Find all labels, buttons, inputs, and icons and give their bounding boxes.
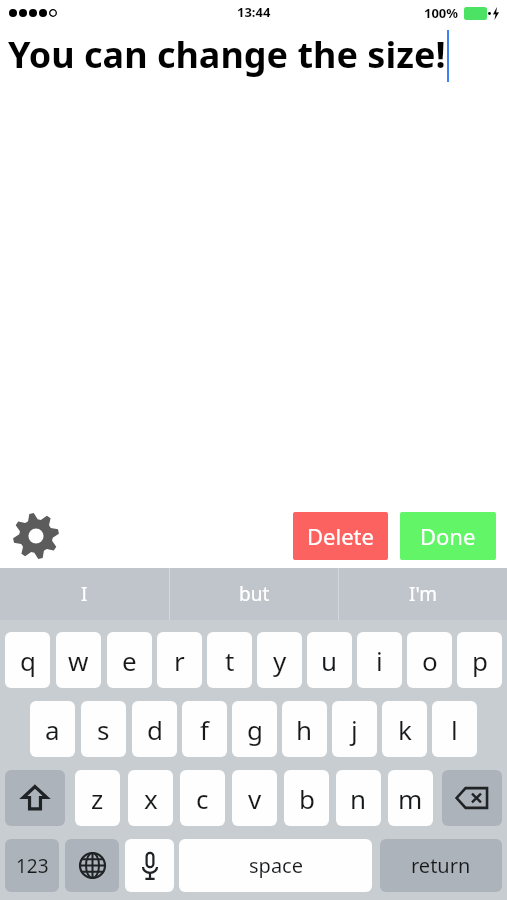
button[interactable]: h bbox=[282, 701, 327, 757]
button[interactable]: but bbox=[170, 568, 338, 620]
button[interactable]: g bbox=[232, 701, 277, 757]
button[interactable]: f bbox=[182, 701, 227, 757]
button[interactable]: y bbox=[257, 632, 302, 688]
button[interactable]: x bbox=[128, 770, 173, 826]
button[interactable]: t bbox=[207, 632, 252, 688]
staticText: 13:44 bbox=[237, 3, 271, 21]
staticText: return bbox=[411, 852, 471, 879]
staticText: h bbox=[296, 712, 313, 747]
staticText: c bbox=[196, 781, 209, 816]
staticText: p bbox=[472, 643, 488, 678]
staticText: 100% bbox=[424, 4, 459, 22]
staticText: o bbox=[422, 643, 438, 678]
staticText: 123 bbox=[16, 853, 49, 879]
staticText: l bbox=[451, 712, 458, 747]
button[interactable]: Done bbox=[400, 512, 496, 560]
staticText: x bbox=[144, 781, 158, 816]
button[interactable]: Change keyboard bbox=[65, 839, 119, 892]
staticText: n bbox=[350, 781, 367, 816]
staticText: I'm bbox=[409, 581, 437, 607]
button[interactable]: Backspace bbox=[442, 770, 502, 826]
button[interactable]: z bbox=[75, 770, 120, 826]
button[interactable]: a bbox=[30, 701, 75, 757]
button[interactable]: Delete bbox=[293, 512, 388, 560]
staticText: f bbox=[200, 712, 209, 747]
button[interactable]: m bbox=[388, 770, 433, 826]
staticText: but bbox=[239, 581, 270, 607]
button[interactable]: Dictate bbox=[125, 839, 174, 892]
staticText: u bbox=[321, 643, 338, 678]
staticText: v bbox=[248, 781, 262, 816]
staticText: You can change the size! bbox=[8, 30, 446, 79]
button[interactable]: j bbox=[332, 701, 377, 757]
button[interactable]: q bbox=[5, 632, 50, 688]
staticText: r bbox=[174, 643, 185, 678]
button[interactable]: r bbox=[157, 632, 202, 688]
staticText: d bbox=[147, 712, 163, 747]
button[interactable]: Shift bbox=[5, 770, 65, 826]
button[interactable]: e bbox=[107, 632, 152, 688]
button[interactable]: i bbox=[357, 632, 402, 688]
button[interactable]: o bbox=[407, 632, 452, 688]
staticText: e bbox=[122, 643, 137, 678]
button[interactable]: v bbox=[232, 770, 277, 826]
button[interactable]: n bbox=[336, 770, 381, 826]
staticText: s bbox=[97, 712, 110, 747]
button[interactable]: c bbox=[180, 770, 225, 826]
staticText: space bbox=[249, 852, 303, 879]
staticText: t bbox=[225, 643, 235, 678]
button[interactable]: 123 bbox=[5, 839, 59, 892]
button[interactable]: b bbox=[284, 770, 329, 826]
button[interactable]: l bbox=[432, 701, 477, 757]
staticText: j bbox=[351, 712, 358, 747]
button[interactable]: I bbox=[0, 568, 169, 620]
button[interactable]: k bbox=[382, 701, 427, 757]
staticText: a bbox=[45, 712, 60, 747]
staticText: y bbox=[273, 643, 287, 678]
staticText: w bbox=[68, 643, 89, 678]
staticText: m bbox=[398, 781, 423, 816]
staticText: k bbox=[398, 712, 412, 747]
staticText: z bbox=[91, 781, 104, 816]
button[interactable]: space bbox=[179, 839, 372, 892]
button[interactable]: w bbox=[56, 632, 101, 688]
staticText: g bbox=[247, 712, 263, 747]
button[interactable]: I'm bbox=[339, 568, 507, 620]
button[interactable]: d bbox=[132, 701, 177, 757]
staticText: Done bbox=[420, 521, 476, 551]
staticText: b bbox=[299, 781, 315, 816]
staticText: I bbox=[81, 581, 88, 607]
button[interactable]: s bbox=[81, 701, 126, 757]
button[interactable]: u bbox=[307, 632, 352, 688]
button[interactable]: return bbox=[380, 839, 502, 892]
staticText: q bbox=[20, 643, 36, 678]
button[interactable]: Settings bbox=[10, 510, 62, 562]
staticText: Delete bbox=[307, 521, 374, 551]
button[interactable]: p bbox=[457, 632, 502, 688]
staticText: i bbox=[376, 643, 383, 678]
